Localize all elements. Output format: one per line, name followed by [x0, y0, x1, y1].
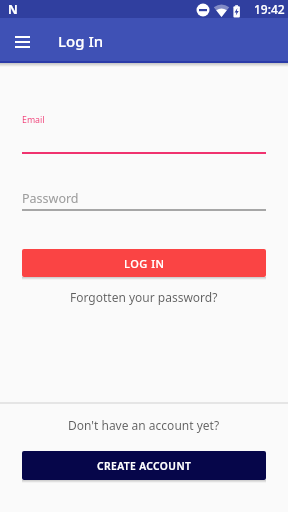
staticText: CREATE ACCOUNT [97, 459, 192, 473]
staticText: Email [22, 114, 45, 126]
staticText: LOG IN [124, 256, 165, 271]
button[interactable] [15, 36, 30, 48]
staticText: 19:42 [254, 1, 285, 17]
button[interactable] [22, 126, 266, 154]
staticText: Forgotten your password? [70, 289, 218, 305]
staticText: Log In [58, 31, 104, 51]
button[interactable]: LOG IN [22, 249, 266, 277]
staticText: N [8, 1, 18, 17]
staticText: Password [22, 190, 79, 207]
button[interactable]: CREATE ACCOUNT [22, 451, 266, 480]
button[interactable]: Forgotten your password? [70, 289, 218, 305]
staticText: Don't have an account yet? [68, 417, 220, 433]
button[interactable] [22, 183, 266, 210]
